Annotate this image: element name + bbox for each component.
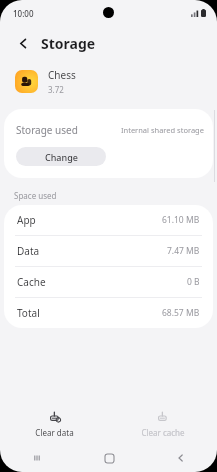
staticText: Data xyxy=(17,244,40,258)
staticText: 61.10 MB xyxy=(162,214,200,226)
button[interactable]: Clear data xyxy=(0,404,108,444)
button[interactable]: App xyxy=(4,205,213,235)
staticText: 3.72 xyxy=(48,84,64,95)
staticText: Change xyxy=(45,151,78,163)
staticText: 7.47 MB xyxy=(167,245,200,257)
staticText: 68.57 MB xyxy=(162,307,200,319)
staticText: Cache xyxy=(17,275,46,289)
button[interactable]: Home xyxy=(73,444,145,472)
button[interactable]: Data xyxy=(4,236,213,266)
staticText: 0 B xyxy=(187,276,200,288)
staticText: Storage used xyxy=(16,123,78,137)
staticText: Clear cache xyxy=(141,427,185,438)
staticText: Space used xyxy=(14,190,57,201)
staticText: App xyxy=(17,213,36,227)
staticText: Storage xyxy=(41,34,96,53)
button[interactable]: Back xyxy=(145,444,217,472)
staticText: Chess xyxy=(48,68,76,82)
staticText: Total xyxy=(17,306,40,320)
staticText: Internal shared storage xyxy=(121,125,204,135)
button[interactable]: Change xyxy=(16,147,106,166)
button[interactable]: Recent apps xyxy=(0,444,73,472)
button[interactable]: Back xyxy=(10,30,36,56)
staticText: Clear data xyxy=(35,427,74,438)
button[interactable]: Cache xyxy=(4,267,213,297)
button[interactable]: Total xyxy=(4,298,213,328)
button[interactable]: Clear cache xyxy=(108,404,217,444)
staticText: 10:00 xyxy=(13,8,34,19)
